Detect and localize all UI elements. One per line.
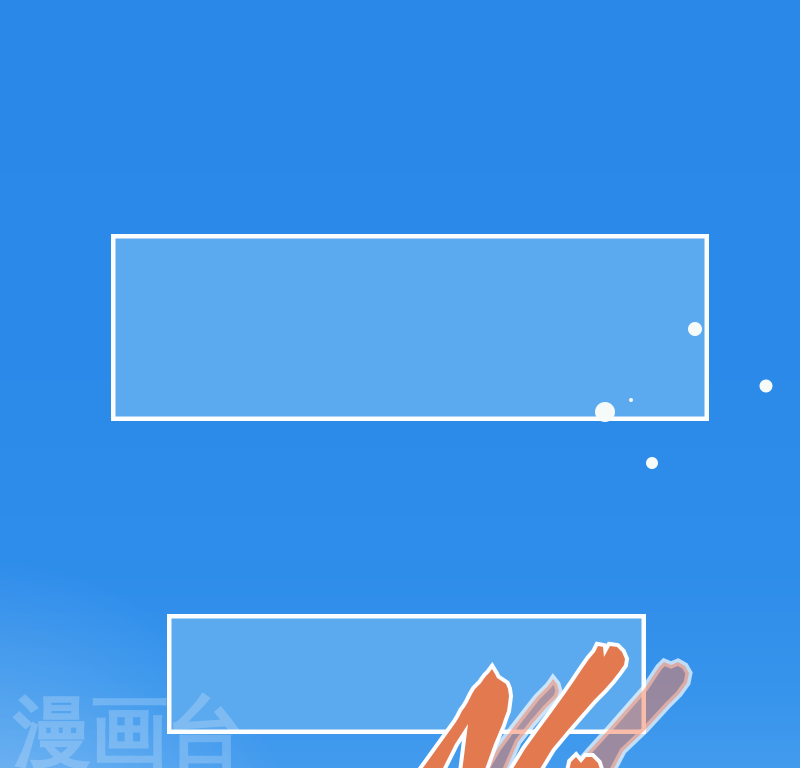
staticText: 漫画台 bbox=[12, 686, 243, 768]
